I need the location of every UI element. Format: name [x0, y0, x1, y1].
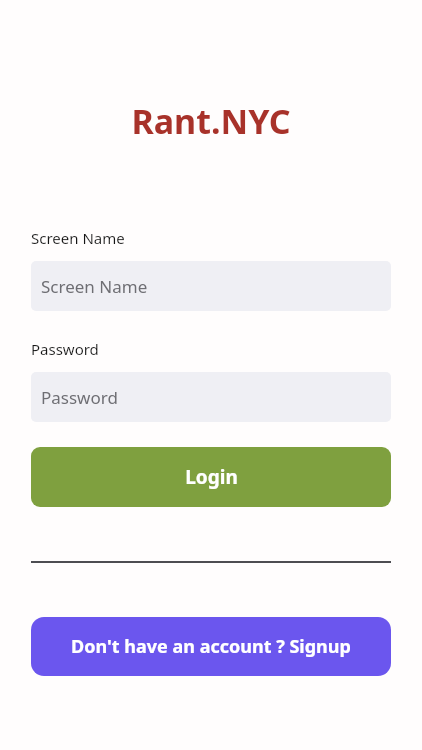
staticText: Password [41, 386, 118, 409]
button[interactable]: Don't have an account ? Signup [31, 617, 391, 676]
button[interactable]: Screen Name [31, 261, 391, 311]
staticText: Screen Name [41, 275, 148, 298]
staticText: Login [185, 464, 238, 490]
button[interactable]: Login [31, 447, 391, 507]
staticText: Password [31, 339, 99, 359]
staticText: Rant.NYC [131, 98, 291, 144]
staticText: Don't have an account ? Signup [71, 634, 351, 659]
button[interactable]: Password [31, 372, 391, 422]
staticText: Screen Name [31, 228, 125, 248]
